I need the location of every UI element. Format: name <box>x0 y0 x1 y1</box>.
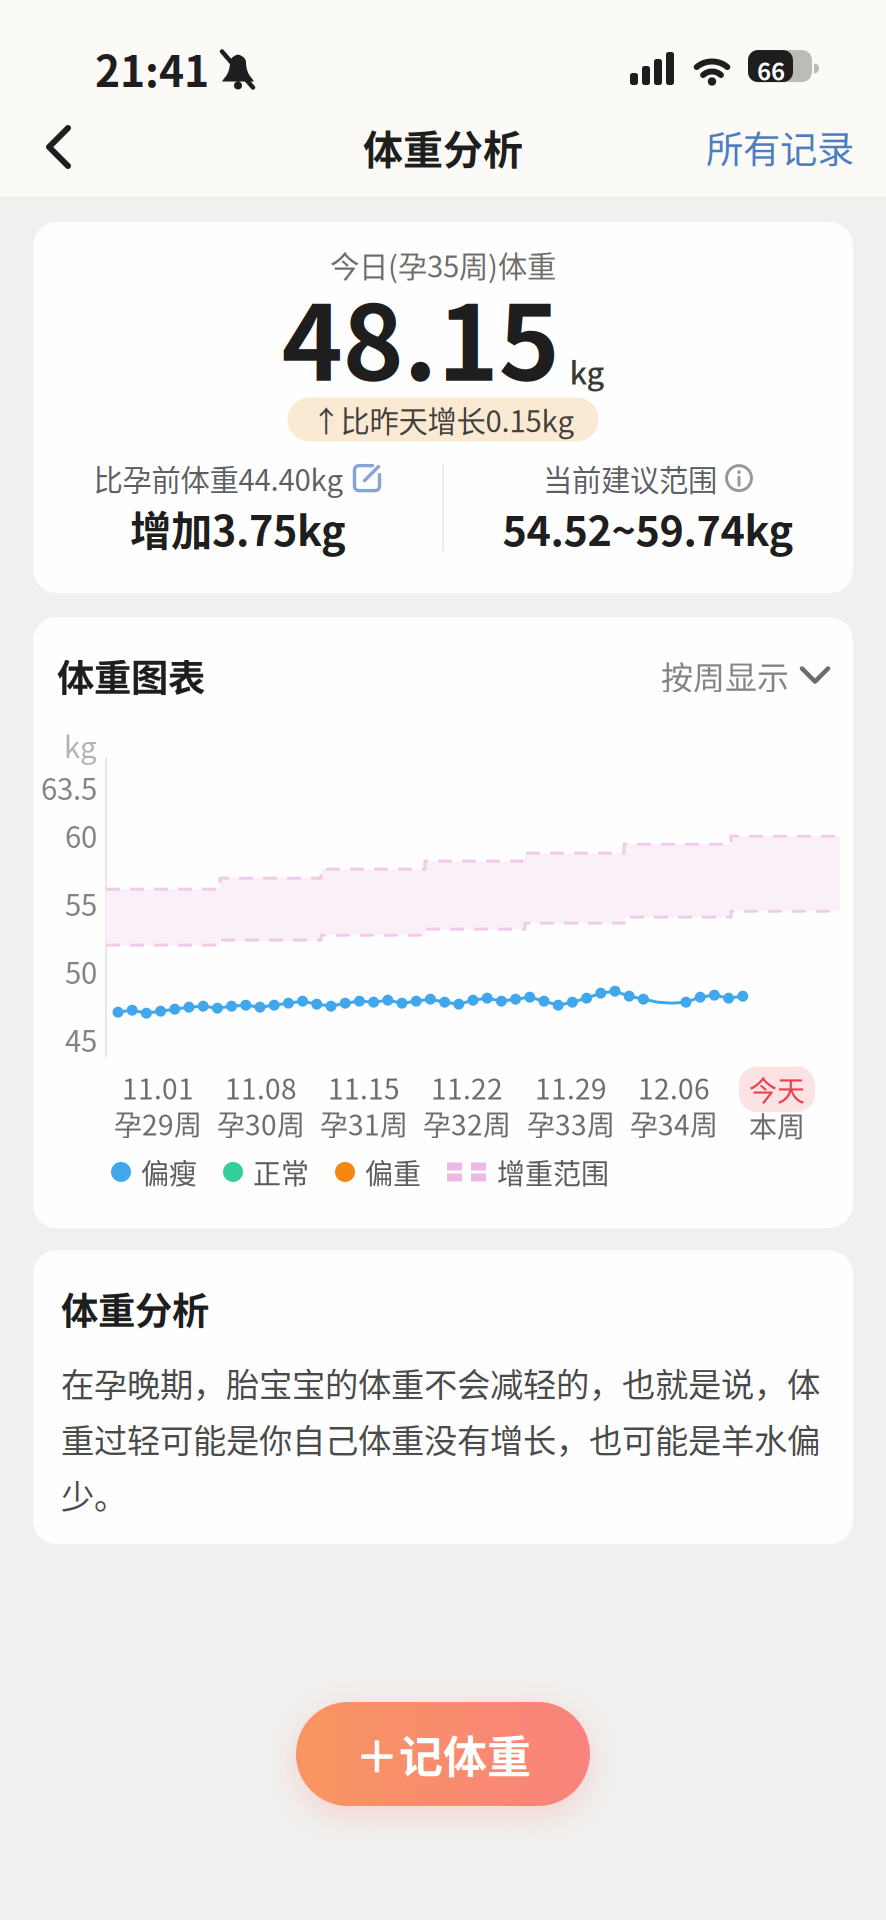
button[interactable]: 所有记录 <box>706 95 886 199</box>
staticText: 孕34周 <box>630 1103 718 1143</box>
staticText: kg <box>569 349 604 393</box>
staticText: 体重图表 <box>57 649 205 702</box>
staticText: 11.08 <box>225 1067 297 1107</box>
staticText: 按周显示 <box>661 653 789 698</box>
staticText: 本周 <box>749 1105 805 1145</box>
staticText: 11.29 <box>535 1067 607 1107</box>
staticText: 12.06 <box>638 1067 710 1107</box>
button[interactable]: ＋记体重 <box>296 1702 590 1806</box>
staticText: 今天 <box>749 1069 805 1109</box>
staticText: 50 <box>65 950 97 992</box>
button[interactable]: 编辑孕前体重 <box>93 457 382 499</box>
staticText: 体重分析 <box>363 119 523 175</box>
staticText: 60 <box>65 814 97 856</box>
staticText: kg <box>64 724 97 766</box>
staticText: 55 <box>65 882 97 924</box>
staticText: 体重分析 <box>61 1282 209 1335</box>
staticText: 66 <box>757 53 785 87</box>
staticText: 偏瘦 <box>141 1152 197 1192</box>
staticText: 孕33周 <box>527 1103 615 1143</box>
staticText: 孕29周 <box>114 1103 202 1143</box>
staticText: 比孕前体重44.40kg <box>93 457 343 499</box>
staticText: ＋记体重 <box>355 1723 531 1785</box>
staticText: 今日(孕35周)体重 <box>330 244 556 285</box>
button[interactable]: 当前建议范围说明 <box>543 457 753 499</box>
staticText: ↑比昨天增长0.15kg <box>311 399 574 440</box>
staticText: 孕30周 <box>217 1103 305 1143</box>
staticText: 当前建议范围 <box>543 457 717 499</box>
staticText: 48.15 <box>281 262 559 409</box>
staticText: 11.22 <box>431 1067 503 1107</box>
staticText: 增重范围 <box>497 1152 609 1192</box>
staticText: 21:41 <box>95 38 209 99</box>
staticText: 孕31周 <box>320 1103 408 1143</box>
staticText: 偏重 <box>365 1152 421 1192</box>
staticText: 54.52~59.74kg <box>502 499 793 557</box>
staticText: 11.15 <box>328 1067 400 1107</box>
button[interactable]: 按周显示 <box>661 653 831 698</box>
button[interactable]: Back <box>0 97 76 197</box>
staticText: 所有记录 <box>706 121 854 173</box>
staticText: 孕32周 <box>423 1103 511 1143</box>
staticText: 11.01 <box>122 1067 194 1107</box>
staticText: 增加3.75kg <box>130 499 346 557</box>
staticText: 63.5 <box>41 766 97 808</box>
staticText: 在孕晚期，胎宝宝的体重不会减轻的，也就是说，体重过轻可能是你自己体重没有增长，也… <box>61 1359 820 1518</box>
staticText: 正常 <box>253 1152 309 1192</box>
staticText: 45 <box>65 1018 97 1060</box>
